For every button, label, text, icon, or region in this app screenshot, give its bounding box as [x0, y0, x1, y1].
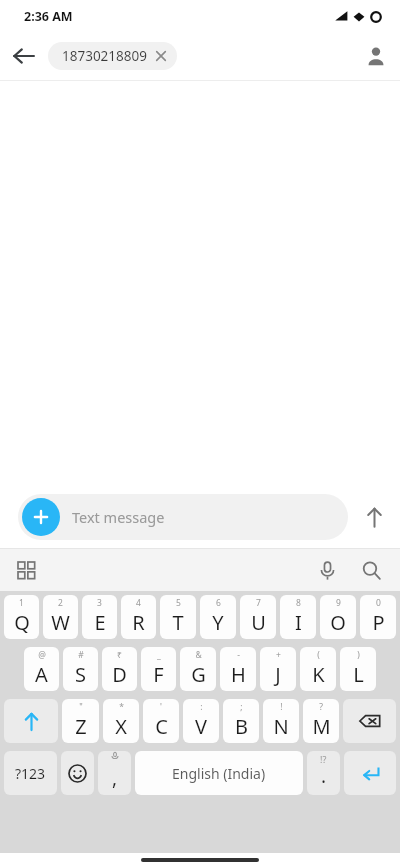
- staticText: L: [353, 661, 364, 688]
- staticText: +: [276, 649, 281, 661]
- staticText: H: [231, 661, 246, 688]
- staticText: ): [357, 649, 360, 661]
- staticText: ;: [240, 701, 243, 713]
- button[interactable]: Send: [348, 491, 400, 543]
- button[interactable]: ': [143, 699, 179, 743]
- button[interactable]: !: [263, 699, 299, 743]
- button[interactable]: 1: [4, 595, 39, 639]
- staticText: ₹: [117, 649, 122, 661]
- button[interactable]: 6: [200, 595, 236, 639]
- button[interactable]: 18730218809: [48, 42, 177, 70]
- button[interactable]: Backspace: [343, 699, 396, 743]
- button[interactable]: :: [183, 699, 219, 743]
- staticText: J: [275, 661, 281, 688]
- staticText: T: [172, 609, 184, 636]
- staticText: ": [79, 701, 83, 713]
- staticText: Text message: [72, 507, 165, 527]
- button[interactable]: 4: [121, 595, 156, 639]
- staticText: &: [195, 649, 202, 661]
- staticText: 1: [19, 597, 24, 609]
- button[interactable]: &: [180, 647, 216, 691]
- button[interactable]: ;: [223, 699, 259, 743]
- staticText: U: [251, 609, 266, 636]
- button[interactable]: ,: [98, 751, 131, 795]
- staticText: P: [372, 609, 385, 636]
- staticText: N: [273, 713, 289, 740]
- staticText: 7: [256, 597, 261, 609]
- staticText: S: [75, 661, 86, 688]
- button[interactable]: _: [141, 647, 176, 691]
- button[interactable]: 7: [240, 595, 276, 639]
- staticText: ?: [319, 701, 323, 713]
- button[interactable]: !?: [307, 751, 340, 795]
- button[interactable]: ": [62, 699, 99, 743]
- staticText: W: [51, 609, 70, 636]
- button[interactable]: ₹: [102, 647, 137, 691]
- staticText: M: [312, 713, 331, 740]
- staticText: 18730218809: [62, 47, 147, 65]
- staticText: !: [280, 701, 283, 713]
- button[interactable]: Enter: [344, 751, 396, 795]
- staticText: X: [115, 713, 127, 740]
- staticText: I: [295, 609, 302, 636]
- button[interactable]: #: [63, 647, 98, 691]
- staticText: C: [155, 713, 168, 740]
- staticText: D: [112, 661, 127, 688]
- staticText: ,: [112, 765, 118, 791]
- button[interactable]: 3: [82, 595, 117, 639]
- button[interactable]: *: [103, 699, 139, 743]
- staticText: 2: [58, 597, 63, 609]
- staticText: :: [200, 701, 203, 713]
- button[interactable]: 5: [160, 595, 196, 639]
- staticText: *: [119, 701, 124, 713]
- button[interactable]: 9: [320, 595, 356, 639]
- staticText: 0: [376, 597, 381, 609]
- button[interactable]: Search: [352, 551, 390, 589]
- button[interactable]: Add attachment: [18, 494, 348, 540]
- staticText: ': [160, 701, 162, 713]
- button[interactable]: ): [340, 647, 376, 691]
- staticText: R: [132, 609, 145, 636]
- staticText: 9: [336, 597, 341, 609]
- staticText: 2:36 AM: [24, 8, 73, 25]
- button[interactable]: Back: [0, 32, 48, 80]
- button[interactable]: Contact details: [352, 32, 400, 80]
- button[interactable]: @: [24, 647, 59, 691]
- staticText: 5: [176, 597, 181, 609]
- button[interactable]: (: [300, 647, 336, 691]
- staticText: _: [157, 649, 161, 661]
- staticText: ?123: [15, 764, 46, 783]
- button[interactable]: 8: [280, 595, 316, 639]
- staticText: -: [237, 649, 240, 661]
- button[interactable]: ?123: [4, 751, 57, 795]
- staticText: Q: [14, 609, 30, 636]
- button[interactable]: 0: [360, 595, 396, 639]
- staticText: .: [321, 763, 327, 789]
- button[interactable]: 2: [43, 595, 78, 639]
- staticText: 4: [136, 597, 141, 609]
- staticText: @: [38, 649, 46, 661]
- button[interactable]: -: [220, 647, 256, 691]
- staticText: 8: [296, 597, 301, 609]
- staticText: F: [153, 661, 164, 688]
- staticText: G: [191, 661, 206, 688]
- staticText: Z: [75, 713, 87, 740]
- button[interactable]: Keyboard switcher: [8, 552, 44, 588]
- button[interactable]: English (India): [135, 751, 303, 795]
- staticText: O: [330, 609, 346, 636]
- staticText: E: [94, 609, 106, 636]
- staticText: Y: [212, 609, 224, 636]
- button[interactable]: Shift: [4, 699, 58, 743]
- staticText: English (India): [172, 764, 266, 783]
- button[interactable]: Emoji: [61, 751, 94, 795]
- button[interactable]: ?: [303, 699, 339, 743]
- staticText: A: [35, 661, 48, 688]
- staticText: !?: [320, 753, 327, 765]
- staticText: K: [312, 661, 325, 688]
- staticText: B: [235, 713, 248, 740]
- button[interactable]: +: [260, 647, 296, 691]
- staticText: 3: [97, 597, 102, 609]
- button[interactable]: Voice input: [308, 551, 346, 589]
- staticText: (: [317, 649, 320, 661]
- button[interactable]: Add attachment: [22, 498, 60, 536]
